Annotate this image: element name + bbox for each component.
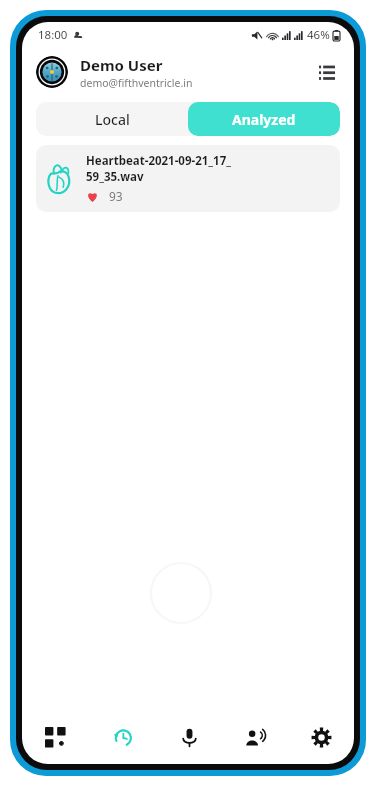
button[interactable] — [36, 56, 68, 88]
button[interactable]: Analyzed — [188, 102, 340, 136]
staticText: Heartbeat-2021-09-21_17_ — [86, 153, 231, 169]
button[interactable]: Add recording — [22, 710, 89, 764]
button[interactable]: Record — [156, 710, 222, 764]
button[interactable]: Voice over — [222, 710, 288, 764]
staticText: 59_35.wav — [86, 169, 144, 185]
staticText: demo@fifthventricle.in — [80, 76, 193, 90]
staticText: 18:00 — [38, 27, 68, 43]
staticText: Demo User — [80, 55, 163, 75]
button[interactable]: History — [89, 710, 156, 764]
button[interactable]: Settings — [288, 710, 354, 764]
button[interactable]: Heartbeat-2021-09-21_17_ — [36, 145, 340, 212]
button[interactable]: Local — [36, 102, 188, 136]
staticText: 46% — [307, 27, 330, 43]
staticText: 93 — [109, 188, 123, 204]
staticText: Analyzed — [232, 110, 296, 129]
staticText: Local — [95, 110, 130, 129]
button[interactable]: Menu — [312, 57, 342, 87]
